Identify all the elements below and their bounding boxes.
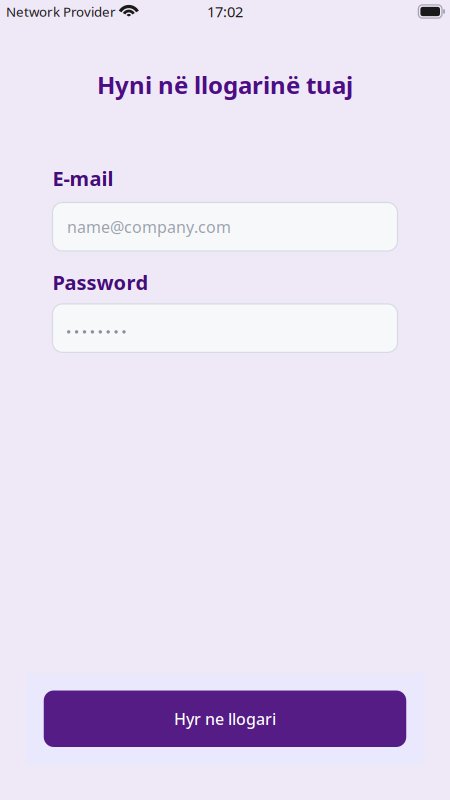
button[interactable]: Hyr ne llogari [44, 690, 406, 747]
staticText: 17:02 [207, 2, 243, 21]
staticText: E-mail [52, 165, 113, 192]
button[interactable]: Password [52, 304, 397, 352]
staticText: Hyr ne llogari [174, 708, 276, 729]
staticText: Network Provider [6, 3, 116, 20]
staticText: Password [52, 269, 148, 295]
staticText: Hyni në llogarinë tuaj [97, 69, 353, 101]
staticText: name@company.com [67, 216, 231, 237]
button[interactable]: E-mail [52, 202, 397, 251]
